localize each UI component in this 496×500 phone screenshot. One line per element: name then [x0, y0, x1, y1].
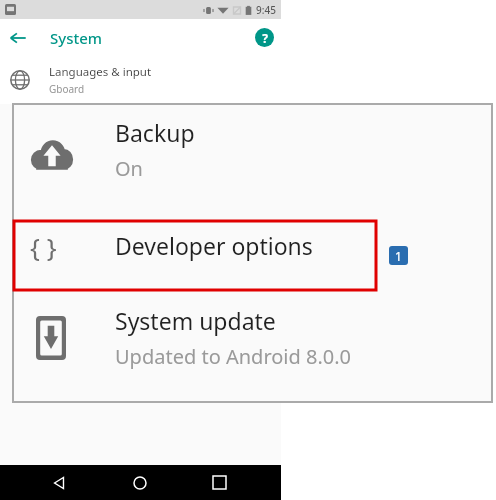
- button[interactable]: Back: [52, 476, 66, 490]
- staticText: ?: [262, 30, 268, 46]
- button[interactable]: Backup: [13, 104, 492, 203]
- staticText: Developer options: [115, 230, 313, 261]
- button[interactable]: Home: [133, 476, 147, 490]
- button[interactable]: { }: [13, 203, 492, 289]
- staticText: Updated to Android 8.0.0: [115, 343, 352, 370]
- staticText: 1: [395, 248, 402, 264]
- staticText: System: [50, 28, 103, 48]
- staticText: On: [115, 155, 143, 182]
- staticText: System update: [115, 305, 276, 336]
- button[interactable]: Recent apps: [213, 476, 226, 489]
- staticText: { }: [30, 229, 57, 264]
- staticText: 9:45: [256, 3, 276, 17]
- button[interactable]: Help: [255, 28, 274, 47]
- button[interactable]: Back: [7, 27, 29, 49]
- staticText: Gboard: [49, 82, 85, 96]
- staticText: Languages & input: [49, 64, 152, 80]
- button[interactable]: Languages & input: [0, 56, 281, 104]
- staticText: Backup: [115, 117, 195, 148]
- button[interactable]: System update: [13, 289, 492, 402]
